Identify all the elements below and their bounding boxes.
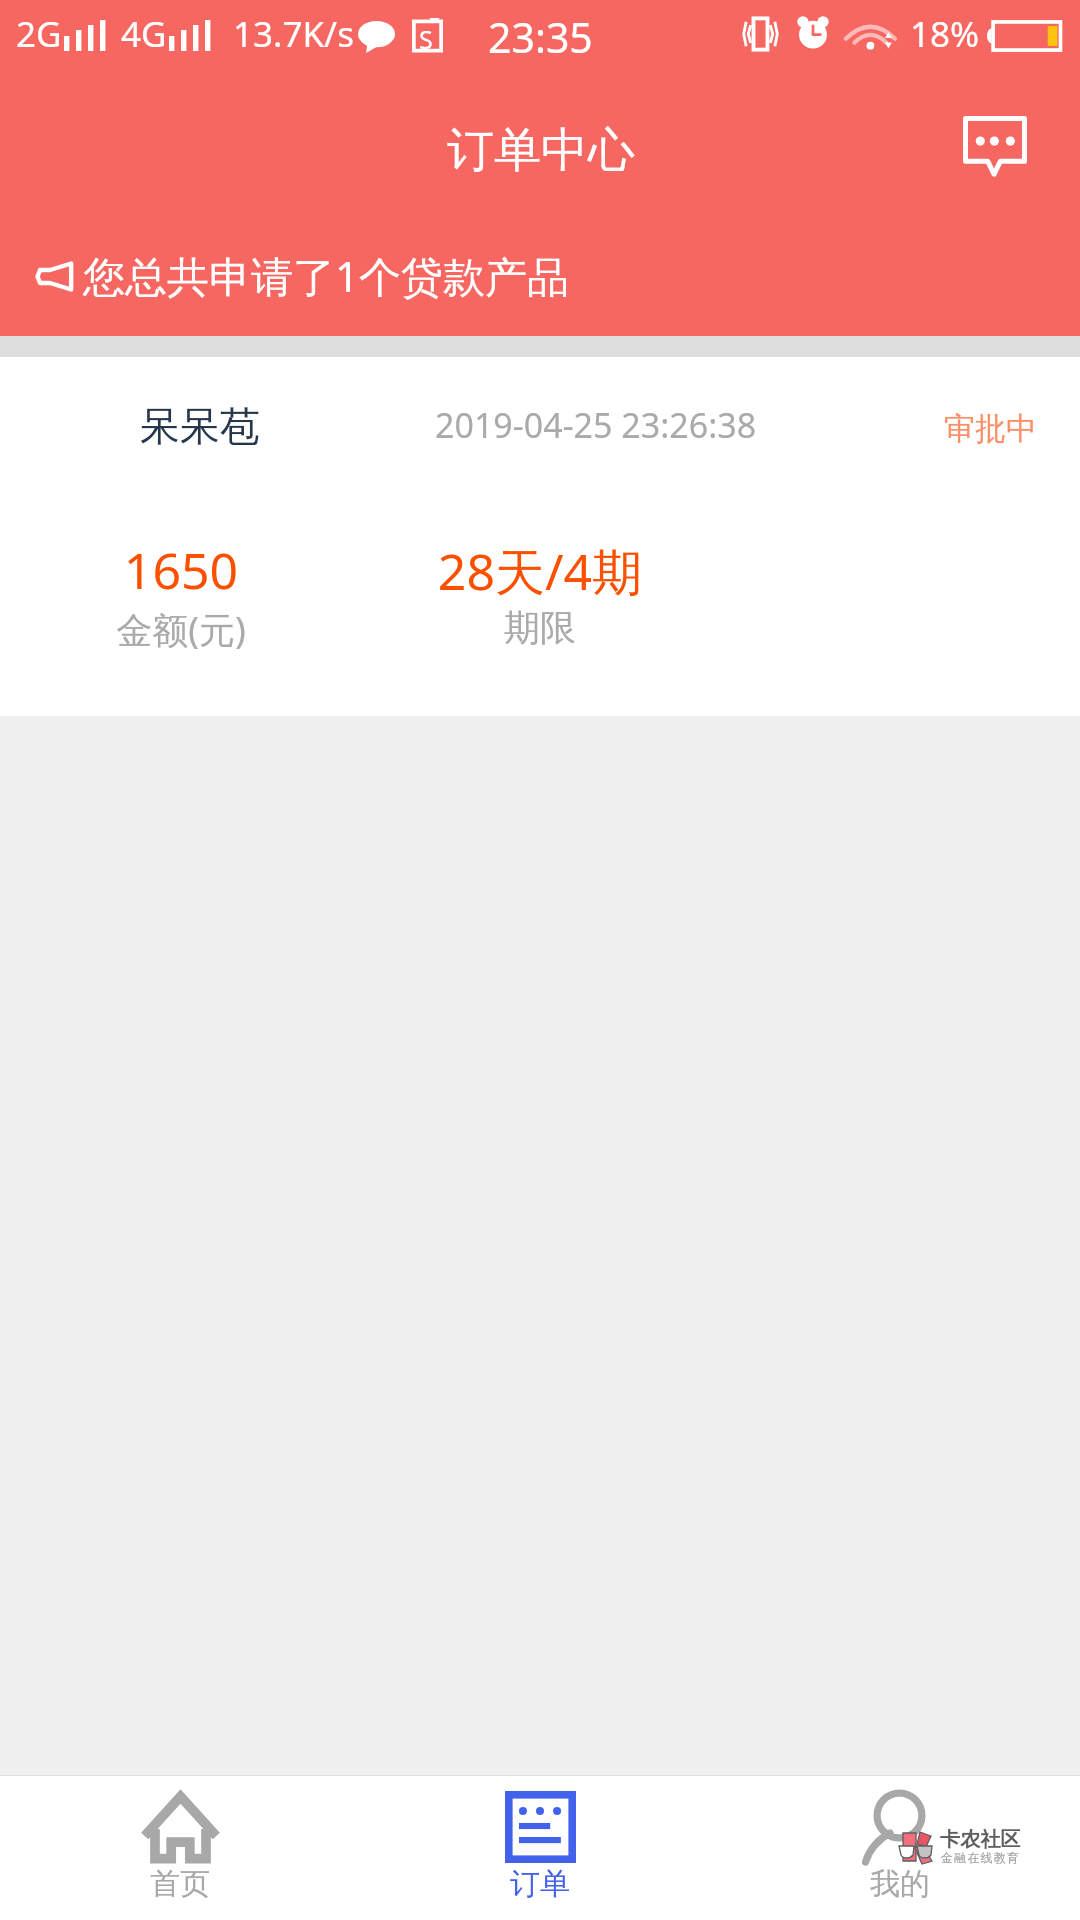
staticText: 2019-04-25 23:26:38 (435, 402, 757, 448)
staticText: 卡农社区 (940, 1827, 1021, 1852)
button[interactable]: 呆呆苞 (0, 357, 1080, 716)
staticText: 您总共申请了1个贷款产品 (83, 247, 570, 304)
staticText: S (419, 22, 433, 56)
staticText: 金融在线教育 (941, 1850, 1021, 1865)
staticText: 订单中心 (447, 121, 635, 180)
button[interactable]: 首页 (0, 1775, 360, 1920)
button[interactable]: 我的 (720, 1775, 1080, 1920)
button[interactable]: 订单 (360, 1775, 720, 1920)
staticText: 2G (16, 10, 62, 58)
staticText: 23:35 (488, 9, 593, 65)
staticText: 1650 (31, 536, 331, 604)
staticText: 18% (910, 10, 980, 58)
staticText: 金额(元) (31, 605, 331, 654)
button[interactable]: Messages (938, 92, 1051, 198)
staticText: 4G (121, 10, 167, 58)
staticText: 审批中 (944, 409, 1037, 448)
staticText: 订单 (510, 1865, 570, 1903)
staticText: 呆呆苞 (140, 401, 260, 451)
staticText: 28天/4期 (390, 537, 690, 605)
staticText: 首页 (150, 1865, 210, 1903)
staticText: 我的 (870, 1865, 930, 1903)
staticText: 期限 (390, 605, 690, 650)
staticText: 13.7K/s (233, 10, 354, 58)
